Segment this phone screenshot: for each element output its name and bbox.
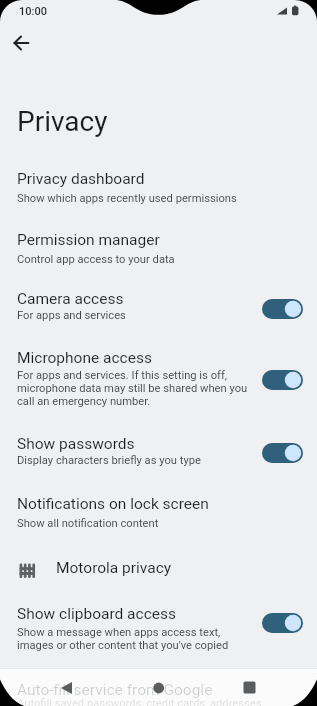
staticText: Notifications on lock screen [17,495,209,513]
staticText: Control app access to your data [17,253,175,266]
staticText: Show which apps recently used permission… [17,192,237,205]
button[interactable]: Notifications on lock screen [0,485,317,541]
staticText: For apps and services [17,309,126,322]
staticText: 10:00 [19,5,47,18]
button[interactable] [53,675,81,701]
staticText: Show all notification content [17,517,159,530]
button[interactable] [262,370,303,390]
button[interactable] [262,613,303,633]
button[interactable]: Permission manager [0,220,317,280]
button[interactable]: Privacy dashboard [0,159,317,219]
button[interactable] [9,31,33,55]
button[interactable]: Microphone access [0,339,317,419]
button[interactable]: Motorola privacy [0,547,317,595]
staticText: Display characters briefly as you type [17,454,201,467]
staticText: Microphone access [17,349,152,367]
button[interactable] [236,675,264,701]
staticText: Privacy [17,105,108,138]
staticText: Camera access [17,290,124,308]
button[interactable] [262,443,303,463]
staticText: Privacy dashboard [17,170,145,188]
button[interactable]: Show clipboard access [0,597,317,659]
button[interactable] [145,675,173,701]
staticText: For apps and services. If this setting i… [17,369,248,408]
staticText: Permission manager [17,231,160,249]
staticText: Show a message when apps access text, im… [17,626,229,652]
staticText: Show passwords [17,435,135,453]
staticText: Motorola privacy [56,559,172,577]
staticText: Autofill saved passwords, credit cards, … [17,697,262,706]
button[interactable] [262,299,303,319]
button[interactable]: Show passwords [0,425,317,479]
staticText: Auto-fill service from Google [17,681,213,699]
staticText: Show clipboard access [17,605,176,623]
button[interactable]: Camera access [0,280,317,334]
